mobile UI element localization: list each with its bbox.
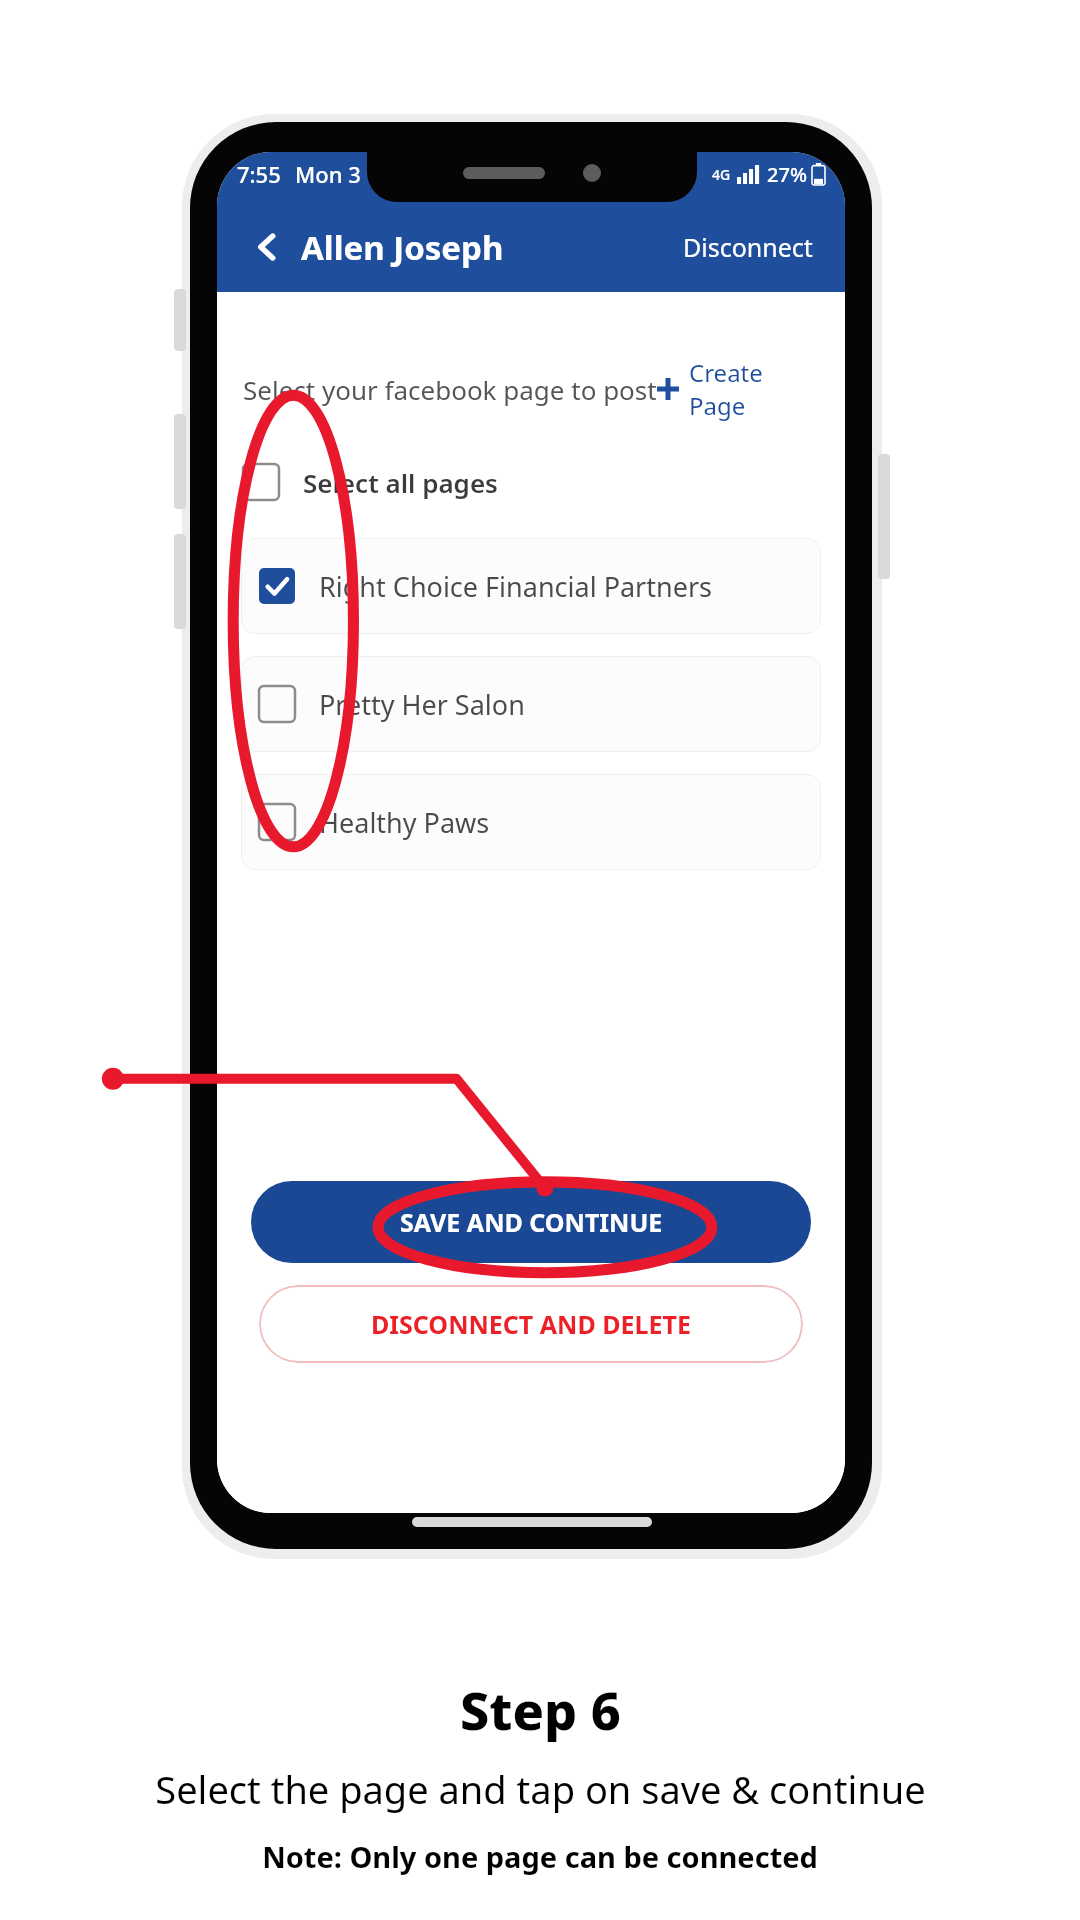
button[interactable]: Right Choice Financial Partners bbox=[241, 538, 821, 634]
button[interactable]: Create Page bbox=[657, 356, 819, 422]
staticText: 4G bbox=[712, 165, 731, 184]
button[interactable]: Pretty Her Salon bbox=[241, 656, 821, 752]
staticText: Select your facebook page to post bbox=[243, 372, 657, 407]
staticText: 27% bbox=[767, 161, 807, 188]
staticText: SAVE AND CONTINUE bbox=[400, 1205, 663, 1239]
staticText: Mon 3 bbox=[295, 159, 361, 189]
staticText: DISCONNECT AND DELETE bbox=[371, 1307, 691, 1341]
button[interactable]: Select all pages bbox=[217, 458, 845, 506]
button[interactable]: Disconnect bbox=[675, 222, 821, 272]
button[interactable]: Back bbox=[241, 221, 293, 273]
staticText: Disconnect bbox=[683, 230, 813, 264]
staticText: Healthy Paws bbox=[319, 804, 490, 841]
button[interactable]: DISCONNECT AND DELETE bbox=[259, 1285, 803, 1363]
staticText: Note: Only one page can be connected bbox=[262, 1837, 818, 1876]
staticText: Pretty Her Salon bbox=[319, 686, 525, 723]
button[interactable]: Healthy Paws bbox=[241, 774, 821, 870]
button[interactable]: SAVE AND CONTINUE bbox=[251, 1181, 811, 1263]
staticText: 7:55 bbox=[237, 159, 281, 189]
staticText: Allen Joseph bbox=[301, 225, 504, 270]
staticText: Create Page bbox=[689, 356, 819, 422]
staticText: Step 6 bbox=[460, 1674, 621, 1745]
staticText: Select the page and tap on save & contin… bbox=[155, 1763, 926, 1815]
staticText: Select all pages bbox=[303, 465, 498, 500]
staticText: Right Choice Financial Partners bbox=[319, 568, 713, 605]
